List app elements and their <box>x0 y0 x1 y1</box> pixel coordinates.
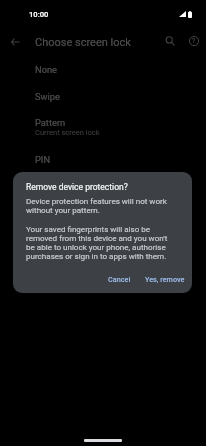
staticText: Pattern <box>35 117 66 128</box>
button[interactable]: Help <box>182 29 206 53</box>
staticText: Remove device protection? <box>26 182 128 192</box>
button[interactable]: Swipe <box>0 83 206 110</box>
staticText: 10:00 <box>29 10 49 19</box>
button[interactable]: Search <box>158 29 182 53</box>
button[interactable]: Pattern <box>0 110 206 143</box>
button[interactable]: Cancel <box>103 272 136 286</box>
staticText: Device protection features will not work… <box>26 197 167 215</box>
staticText: Yes, remove <box>145 275 185 283</box>
staticText: ? <box>192 37 196 45</box>
staticText: Cancel <box>108 275 131 283</box>
button[interactable]: None <box>0 56 206 83</box>
button[interactable]: Back <box>3 30 27 54</box>
staticText: Current screen lock <box>35 128 100 137</box>
staticText: PIN <box>35 154 51 165</box>
staticText: Swipe <box>35 91 60 102</box>
staticText: Your saved fingerprints will also be rem… <box>26 225 168 261</box>
staticText: None <box>35 64 57 75</box>
button[interactable]: Yes, remove <box>140 272 190 286</box>
staticText: Choose screen lock <box>35 36 131 49</box>
button[interactable]: PIN <box>0 146 206 173</box>
